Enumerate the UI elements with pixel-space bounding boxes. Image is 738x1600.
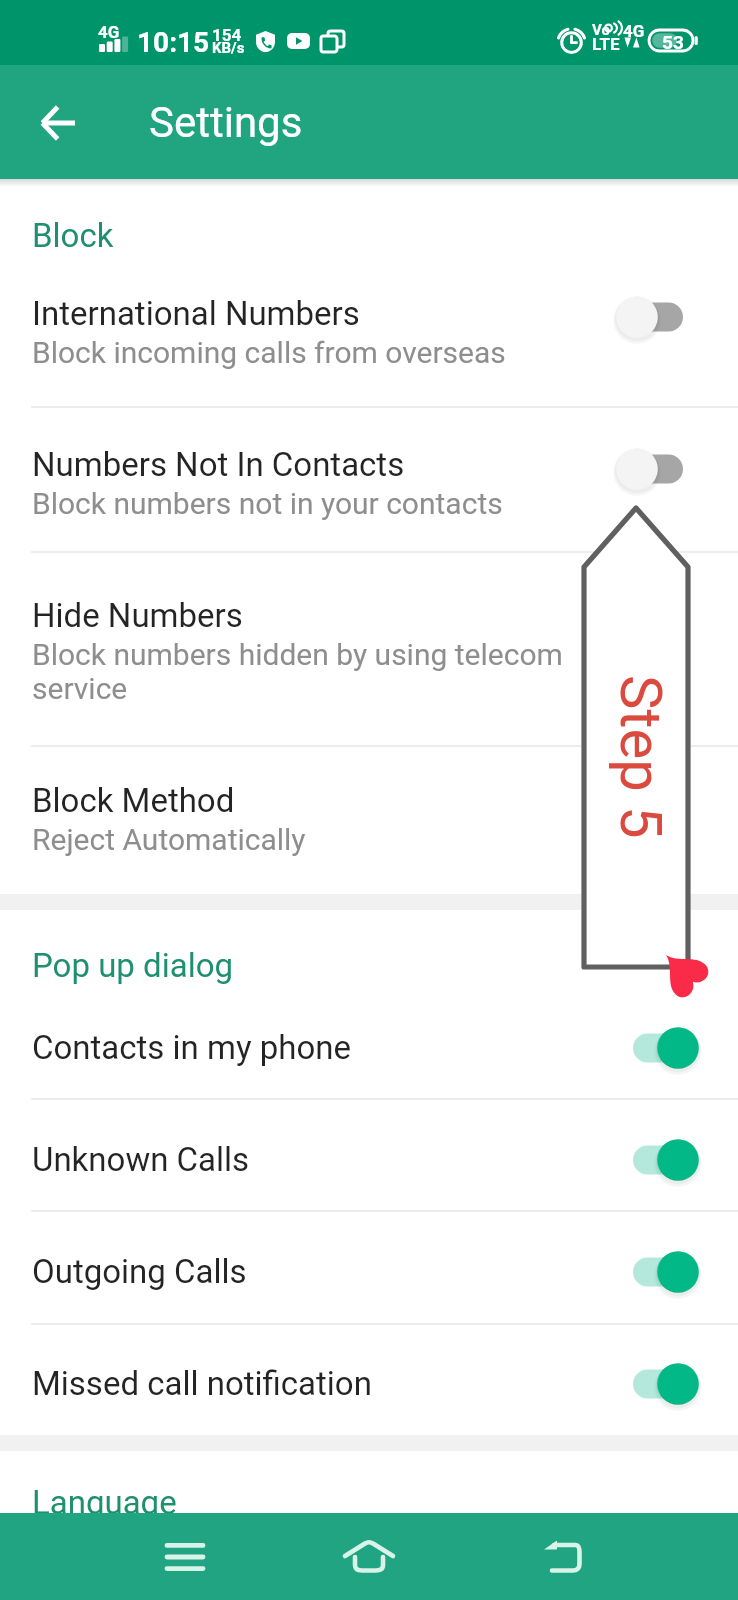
staticText: 154 xyxy=(212,25,242,45)
button[interactable]: Switch on xyxy=(606,1129,710,1191)
button[interactable]: Block xyxy=(32,216,114,255)
staticText: 10:15 xyxy=(137,26,210,59)
staticText: 53 xyxy=(662,31,684,53)
staticText: Step 5 xyxy=(607,675,675,839)
button[interactable]: Navigate up xyxy=(19,84,96,161)
button[interactable]: Unknown Calls xyxy=(32,1140,250,1179)
button[interactable]: Switch on xyxy=(606,1241,710,1303)
staticText: Reject Automatically xyxy=(32,822,306,857)
button[interactable]: Switch on xyxy=(606,1353,710,1415)
button[interactable]: Numbers Not In Contacts xyxy=(32,445,405,484)
staticText: Block xyxy=(32,216,114,255)
button[interactable]: Language xyxy=(32,1483,177,1522)
button[interactable]: Recent apps xyxy=(140,1523,230,1591)
staticText: Settings xyxy=(149,98,303,147)
button[interactable]: Back xyxy=(518,1523,608,1591)
staticText: 4G xyxy=(623,21,645,41)
staticText: Missed call notification xyxy=(32,1364,372,1403)
button[interactable]: Outgoing Calls xyxy=(32,1252,247,1291)
staticText: Block numbers hidden by using telecom xyxy=(32,637,563,672)
staticText: Block Method xyxy=(32,781,235,820)
button[interactable]: Home xyxy=(324,1523,414,1591)
staticText: Numbers Not In Contacts xyxy=(32,445,405,484)
button[interactable]: Switch on xyxy=(606,1017,710,1079)
button[interactable]: Missed call notification xyxy=(32,1364,372,1403)
button[interactable]: Contacts in my phone xyxy=(32,1028,351,1067)
staticText: Block numbers not in your contacts xyxy=(32,486,503,521)
staticText: LTE xyxy=(592,34,620,54)
button[interactable]: International Numbers xyxy=(32,294,360,333)
staticText: service xyxy=(32,671,128,706)
staticText: Block incoming calls from overseas xyxy=(32,335,506,370)
button[interactable]: Pop up dialog xyxy=(32,946,234,985)
staticText: Hide Numbers xyxy=(32,596,243,635)
button[interactable]: Block Method xyxy=(32,781,235,820)
button[interactable]: Switch off xyxy=(606,438,710,500)
staticText: Pop up dialog xyxy=(32,946,234,985)
button[interactable]: Hide Numbers xyxy=(32,596,243,635)
staticText: Contacts in my phone xyxy=(32,1028,351,1067)
staticText: International Numbers xyxy=(32,294,360,333)
staticText: 4G xyxy=(98,22,120,42)
staticText: Unknown Calls xyxy=(32,1140,250,1179)
staticText: KB/s xyxy=(212,39,245,57)
button[interactable]: Switch off xyxy=(606,286,710,348)
staticText: Language xyxy=(32,1483,177,1522)
staticText: Outgoing Calls xyxy=(32,1252,247,1291)
staticText: Vo xyxy=(592,21,610,39)
